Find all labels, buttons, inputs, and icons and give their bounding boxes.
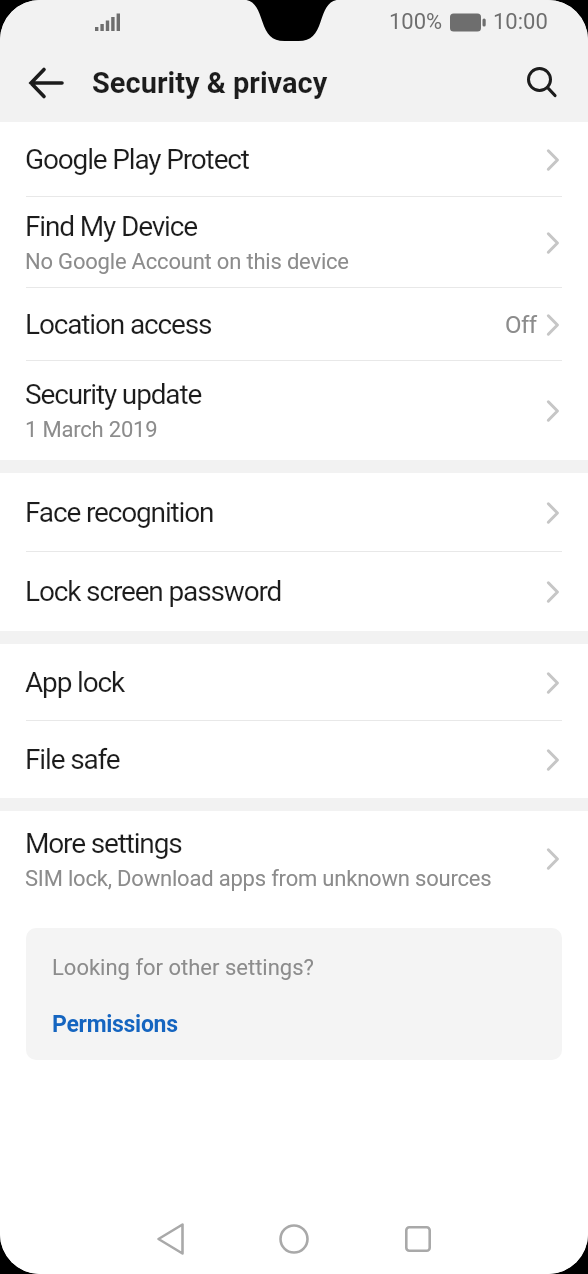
staticText: Security & privacy bbox=[92, 66, 328, 100]
button[interactable]: Location access bbox=[0, 288, 588, 361]
button[interactable] bbox=[518, 59, 566, 107]
staticText: Google Play Protect bbox=[25, 143, 249, 176]
staticText: Find My Device bbox=[25, 210, 197, 243]
button[interactable]: More settings bbox=[0, 811, 588, 907]
button[interactable] bbox=[396, 1217, 440, 1261]
staticText: Security update bbox=[25, 378, 202, 411]
button[interactable]: Permissions bbox=[52, 1011, 178, 1038]
button[interactable]: Looking for other settings? bbox=[26, 928, 562, 1060]
staticText: Lock screen password bbox=[25, 575, 282, 608]
button[interactable] bbox=[20, 57, 72, 109]
button[interactable]: Google Play Protect bbox=[0, 122, 588, 197]
staticText: Face recognition bbox=[25, 496, 214, 529]
staticText: 100% bbox=[389, 9, 443, 35]
button[interactable] bbox=[272, 1217, 316, 1261]
staticText: SIM lock, Download apps from unknown sou… bbox=[25, 866, 492, 892]
button[interactable] bbox=[148, 1217, 192, 1261]
staticText: Location access bbox=[25, 308, 212, 341]
staticText: Looking for other settings? bbox=[52, 955, 314, 981]
staticText: No Google Account on this device bbox=[25, 249, 349, 275]
button[interactable]: Security update bbox=[0, 361, 588, 460]
button[interactable]: Lock screen password bbox=[0, 552, 588, 631]
staticText: 1 March 2019 bbox=[25, 417, 158, 443]
staticText: File safe bbox=[25, 743, 120, 776]
button[interactable]: File safe bbox=[0, 721, 588, 798]
staticText: Off bbox=[505, 311, 537, 339]
staticText: 10:00 bbox=[493, 9, 548, 35]
button[interactable]: Find My Device bbox=[0, 197, 588, 288]
button[interactable]: App lock bbox=[0, 644, 588, 721]
button[interactable]: Face recognition bbox=[0, 473, 588, 552]
staticText: App lock bbox=[25, 666, 125, 699]
staticText: More settings bbox=[25, 827, 182, 860]
